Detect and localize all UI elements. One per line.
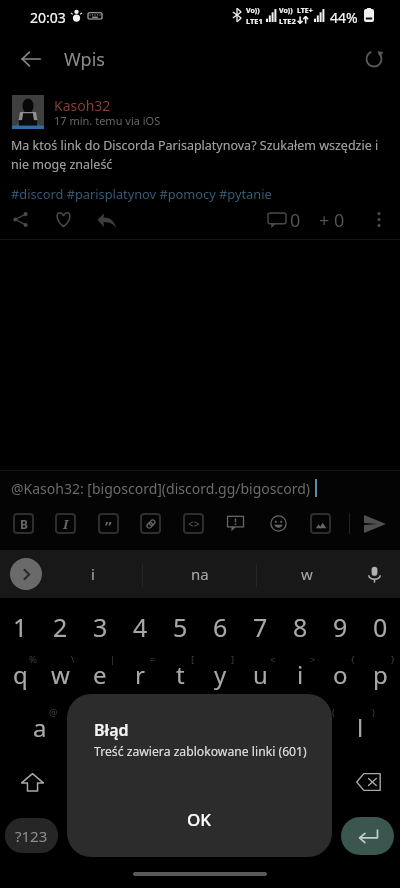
button[interactable]: @ bbox=[20, 698, 60, 748]
button[interactable]: ) bbox=[340, 698, 380, 748]
button[interactable]: Reply bbox=[89, 203, 124, 238]
button[interactable]: Share bbox=[3, 202, 38, 237]
button[interactable]: 0 bbox=[360, 602, 400, 652]
button[interactable]: Refresh bbox=[351, 36, 397, 82]
button[interactable]: Avatar bbox=[12, 95, 44, 129]
staticText: y bbox=[214, 658, 227, 691]
button[interactable]: < bbox=[240, 645, 280, 695]
button[interactable]: ! bbox=[259, 757, 298, 807]
button[interactable]: 9 bbox=[320, 602, 360, 652]
staticText: Ma ktoś link do Discorda Parisaplatynova… bbox=[11, 137, 383, 173]
button[interactable]: Bold bbox=[13, 513, 34, 534]
button[interactable]: } bbox=[360, 645, 400, 695]
button[interactable]: + 0 bbox=[319, 208, 345, 233]
button[interactable]: Kasoh32 bbox=[54, 96, 111, 115]
button[interactable]: Link bbox=[140, 513, 161, 534]
button[interactable]: * bbox=[64, 757, 103, 807]
button[interactable]: 2 bbox=[40, 602, 80, 652]
button[interactable]: Comments bbox=[259, 203, 294, 238]
staticText: Błąd bbox=[94, 719, 129, 741]
staticText: 4 bbox=[133, 610, 148, 644]
button[interactable]: Enter bbox=[341, 817, 394, 855]
button[interactable]: 3 bbox=[80, 602, 120, 652]
button[interactable]: Like bbox=[46, 202, 81, 237]
staticText: 3 bbox=[93, 610, 108, 644]
button[interactable]: Back bbox=[8, 36, 54, 82]
staticText: @ bbox=[49, 706, 58, 719]
staticText: > bbox=[310, 653, 316, 666]
staticText: 2 bbox=[53, 610, 68, 644]
button[interactable]: | bbox=[80, 645, 120, 695]
button[interactable]: Image bbox=[310, 513, 331, 534]
button[interactable]: 6 bbox=[200, 602, 240, 652]
button[interactable]: - bbox=[220, 698, 260, 748]
button[interactable]: ?123 bbox=[5, 818, 58, 853]
staticText: t bbox=[176, 658, 185, 691]
button[interactable]: 5 bbox=[160, 602, 200, 652]
staticText: a bbox=[33, 711, 47, 744]
staticText: 9 bbox=[333, 610, 348, 644]
staticText: na bbox=[191, 564, 209, 584]
button[interactable]: Send bbox=[358, 507, 392, 541]
staticText: p bbox=[373, 658, 388, 691]
button[interactable]: % bbox=[0, 645, 40, 695]
staticText: ) bbox=[372, 706, 375, 719]
staticText: | bbox=[110, 653, 116, 666]
button[interactable]: i bbox=[44, 550, 142, 598]
staticText: 6 bbox=[213, 610, 228, 644]
staticText: <> bbox=[188, 517, 200, 531]
button[interactable]: Shift bbox=[0, 757, 64, 807]
button[interactable]: #discord #parisplatynov #pomocy #pytanie bbox=[11, 185, 272, 202]
button[interactable]: w bbox=[257, 550, 357, 598]
button[interactable]: 1 bbox=[0, 602, 40, 652]
staticText: = bbox=[150, 653, 156, 666]
button[interactable]: Voice input bbox=[362, 562, 386, 586]
staticText: Wpis bbox=[64, 47, 105, 72]
button[interactable]: \ bbox=[40, 645, 80, 695]
staticText: ” bbox=[105, 516, 112, 536]
button[interactable]: [ bbox=[160, 645, 200, 695]
button[interactable]: # bbox=[60, 698, 100, 748]
button[interactable]: Expand suggestions bbox=[10, 558, 42, 590]
staticText: 5 bbox=[173, 610, 188, 644]
staticText: Vo)) bbox=[246, 6, 260, 16]
button[interactable]: { bbox=[320, 645, 360, 695]
button[interactable]: _ bbox=[140, 698, 180, 748]
button[interactable]: ( bbox=[300, 698, 340, 748]
button[interactable]: Code bbox=[183, 513, 204, 534]
button[interactable]: + bbox=[260, 698, 300, 748]
button[interactable]: > bbox=[280, 645, 320, 695]
button[interactable]: & bbox=[180, 698, 220, 748]
button[interactable]: Quote bbox=[98, 513, 119, 534]
button[interactable]: $ bbox=[100, 698, 140, 748]
button[interactable]: 4 bbox=[120, 602, 160, 652]
button[interactable]: Italic bbox=[55, 513, 76, 534]
button[interactable]: Emoji bbox=[268, 513, 289, 534]
button[interactable]: 7 bbox=[240, 602, 280, 652]
button[interactable]: = bbox=[120, 645, 160, 695]
staticText: u bbox=[253, 658, 268, 691]
button[interactable]: OK bbox=[67, 789, 332, 849]
button[interactable]: ? bbox=[298, 757, 337, 807]
button[interactable]: More options bbox=[361, 202, 396, 237]
button[interactable]: 8 bbox=[280, 602, 320, 652]
button[interactable]: Spoiler bbox=[225, 513, 246, 534]
staticText: 7 bbox=[253, 610, 268, 644]
staticText: w bbox=[301, 564, 313, 584]
button[interactable]: Backspace bbox=[337, 757, 400, 807]
button[interactable]: ] bbox=[200, 645, 240, 695]
button[interactable]: na bbox=[143, 550, 256, 598]
